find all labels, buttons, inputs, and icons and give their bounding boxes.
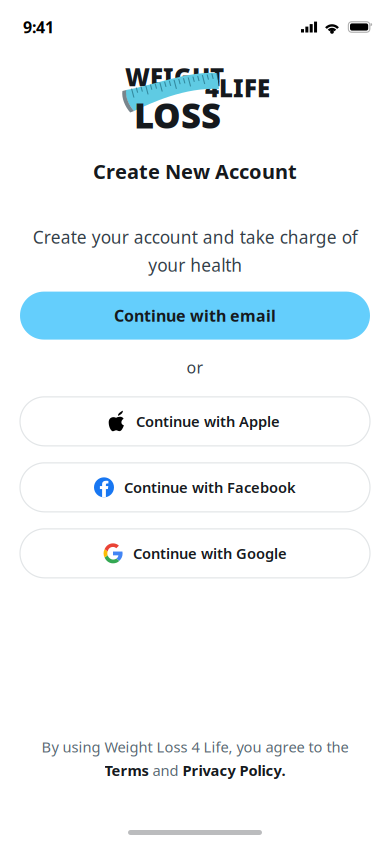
staticText: Continue with Google [133, 544, 287, 563]
staticText: 4LIFE [205, 72, 270, 104]
staticText: Privacy Policy. [182, 760, 285, 780]
staticText: LOSS [134, 92, 221, 138]
staticText: Continue with email [114, 305, 276, 326]
staticText: Create New Account [93, 158, 297, 185]
staticText: Continue with Apple [136, 412, 280, 431]
staticText: Continue with Facebook [124, 478, 296, 497]
button[interactable]: Continue with email [20, 292, 370, 340]
staticText: 9:41 [23, 16, 54, 38]
staticText: Terms [104, 760, 148, 780]
button[interactable]: Privacy Policy. [182, 760, 285, 780]
button[interactable]: Terms [104, 760, 148, 780]
button[interactable]: Continue with Facebook [20, 463, 370, 512]
button[interactable]: Continue with Google [20, 529, 370, 578]
button[interactable]: Continue with Apple [20, 397, 370, 446]
staticText: WEIGHT [125, 61, 224, 93]
staticText: Create your account and take charge of y… [32, 226, 357, 277]
staticText: By using Weight Loss 4 Life, you agree t… [41, 737, 348, 756]
staticText: and [152, 760, 178, 780]
staticText: or [186, 357, 203, 378]
